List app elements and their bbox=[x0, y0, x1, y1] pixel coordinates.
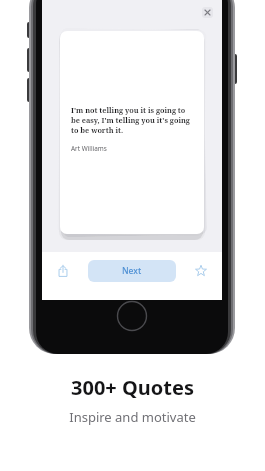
staticText: I'm not telling you it is going to be ea… bbox=[71, 105, 193, 135]
button[interactable]: I'm not telling you it is going to be ea… bbox=[60, 31, 204, 234]
staticText: 300+ Quotes bbox=[71, 374, 194, 401]
staticText: Art Williams bbox=[71, 144, 107, 153]
button[interactable]: Next bbox=[88, 260, 176, 282]
button[interactable]: Favorite bbox=[190, 260, 212, 282]
staticText: Inspire and motivate bbox=[69, 408, 196, 426]
staticText: Next bbox=[122, 265, 142, 277]
button[interactable]: Close bbox=[202, 7, 213, 18]
button[interactable]: Share bbox=[52, 260, 74, 282]
